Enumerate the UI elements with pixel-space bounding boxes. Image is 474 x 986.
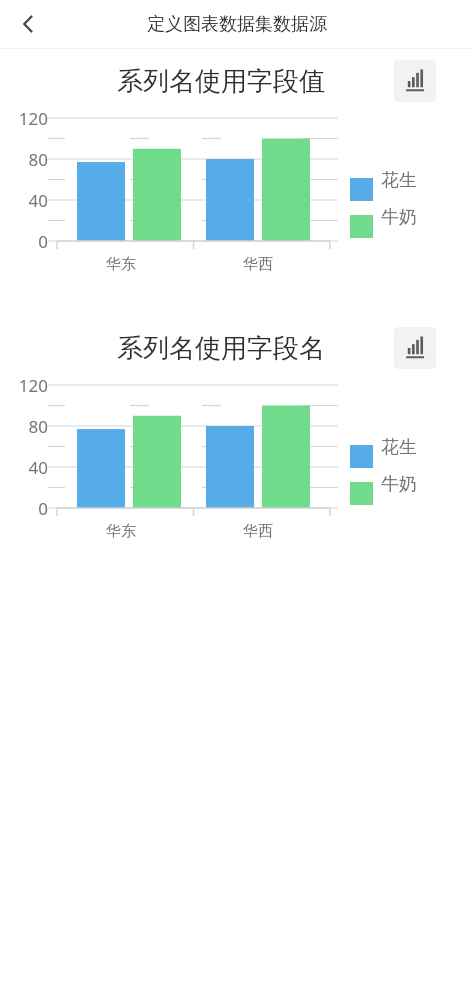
staticText: 华西 (243, 255, 273, 274)
button[interactable]: Chart type (394, 327, 436, 369)
staticText: 0 (0, 497, 48, 520)
staticText: 80 (0, 415, 48, 438)
staticText: 华东 (106, 255, 136, 274)
button[interactable]: Chart type (394, 60, 436, 102)
staticText: 0 (0, 230, 48, 253)
staticText: 牛奶 (381, 206, 417, 229)
staticText: 定义图表数据集数据源 (147, 13, 327, 36)
staticText: 华西 (243, 522, 273, 541)
staticText: 40 (0, 189, 48, 212)
staticText: 花生 (381, 169, 417, 192)
staticText: 120 (0, 374, 48, 397)
staticText: 80 (0, 148, 48, 171)
staticText: 系列名使用字段名 (117, 332, 325, 365)
button[interactable]: Back (6, 2, 50, 46)
staticText: 系列名使用字段值 (117, 65, 325, 98)
staticText: 华东 (106, 522, 136, 541)
staticText: 牛奶 (381, 473, 417, 496)
staticText: 120 (0, 107, 48, 130)
staticText: 花生 (381, 436, 417, 459)
staticText: 40 (0, 456, 48, 479)
